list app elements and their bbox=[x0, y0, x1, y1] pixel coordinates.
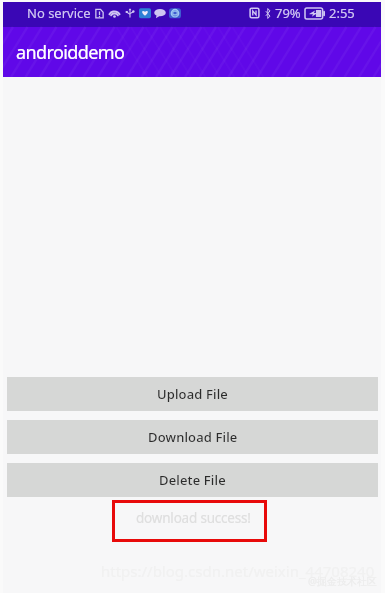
staticText: Download File bbox=[148, 428, 238, 446]
other: App notification bbox=[169, 7, 181, 19]
button[interactable]: Upload File bbox=[7, 377, 378, 411]
other: Bluetooth on bbox=[263, 7, 273, 20]
other: No SIM card bbox=[93, 7, 106, 20]
staticText: 79% bbox=[275, 4, 301, 22]
other: Wi-Fi bbox=[108, 7, 121, 20]
staticText: download success! bbox=[136, 509, 251, 527]
other: USB connected bbox=[124, 7, 136, 19]
staticText: androiddemo bbox=[16, 40, 125, 65]
other: NFC on bbox=[249, 7, 260, 19]
other: Battery charging 79 percent bbox=[305, 8, 325, 19]
button[interactable]: Download File bbox=[7, 420, 378, 454]
staticText: Delete File bbox=[159, 471, 226, 489]
staticText: No service bbox=[27, 4, 91, 22]
button[interactable]: Delete File bbox=[7, 463, 378, 497]
staticText: Upload File bbox=[157, 385, 228, 403]
other: App notification bbox=[139, 7, 151, 19]
other: New message bbox=[154, 7, 166, 19]
staticText: 2:55 bbox=[329, 4, 355, 22]
staticText: @掘金技术社区 bbox=[308, 574, 377, 588]
